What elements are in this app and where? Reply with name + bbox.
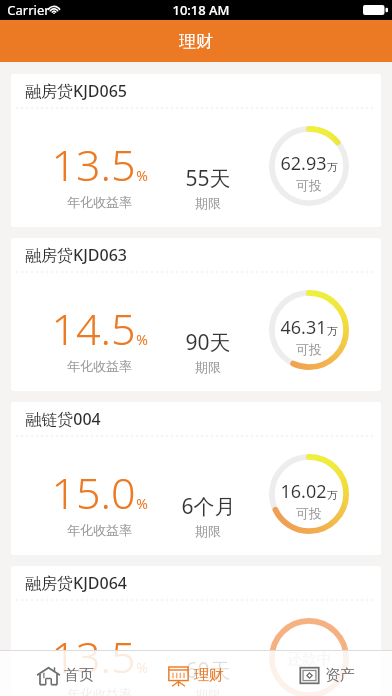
staticText: 期限 xyxy=(195,195,221,211)
staticText: 可投 xyxy=(296,341,322,357)
staticText: 万 xyxy=(327,160,338,174)
staticText: 期限 xyxy=(195,523,221,539)
staticText: 年化收益率 xyxy=(67,686,132,696)
staticText: 融链贷004 xyxy=(25,408,101,430)
staticText: Carrier xyxy=(7,1,50,19)
staticText: 期限 xyxy=(195,687,221,696)
staticText: 年化收益率 xyxy=(67,194,132,210)
staticText: 16.02 xyxy=(280,479,327,504)
staticText: 还款中 xyxy=(287,650,332,669)
staticText: % xyxy=(136,166,148,185)
button[interactable]: 融链贷004 xyxy=(11,402,381,555)
staticText: 14.5 xyxy=(51,299,136,358)
staticText: 15.0 xyxy=(51,463,136,522)
staticText: 融房贷KJD064 xyxy=(25,572,127,594)
staticText: 理财 xyxy=(179,31,213,52)
staticText: 55天 xyxy=(185,164,231,193)
staticText: 90天 xyxy=(185,328,231,357)
staticText: 万 xyxy=(327,324,338,338)
staticText: 6个月 xyxy=(181,492,236,521)
staticText: % xyxy=(136,658,148,677)
staticText: 融房贷KJD065 xyxy=(25,80,127,102)
staticText: 可投 xyxy=(296,505,322,521)
staticText: 46.31 xyxy=(280,315,327,340)
staticText: 理财 xyxy=(194,666,224,685)
staticText: 融房贷KJD063 xyxy=(25,244,127,266)
staticText: 62.93 xyxy=(280,151,327,176)
staticText: % xyxy=(136,330,148,349)
button[interactable]: 资产 xyxy=(261,651,392,696)
staticText: 60天 xyxy=(185,656,231,685)
button[interactable]: 理财 xyxy=(130,651,261,696)
staticText: 10:18 AM xyxy=(172,1,230,19)
button[interactable]: 融房贷KJD065 xyxy=(11,74,381,227)
button[interactable]: 融房贷KJD063 xyxy=(11,238,381,391)
staticText: % xyxy=(136,494,148,513)
staticText: 13.5 xyxy=(51,627,136,686)
staticText: 可投 xyxy=(296,177,322,193)
button[interactable]: 融房贷KJD064 xyxy=(11,566,381,696)
staticText: 首页 xyxy=(64,666,94,685)
button[interactable]: 首页 xyxy=(0,651,130,696)
staticText: 资产 xyxy=(325,666,355,685)
staticText: 年化收益率 xyxy=(67,522,132,538)
staticText: 年化收益率 xyxy=(67,358,132,374)
staticText: 期限 xyxy=(195,359,221,375)
staticText: 13.5 xyxy=(51,135,136,194)
staticText: 万 xyxy=(327,488,338,502)
